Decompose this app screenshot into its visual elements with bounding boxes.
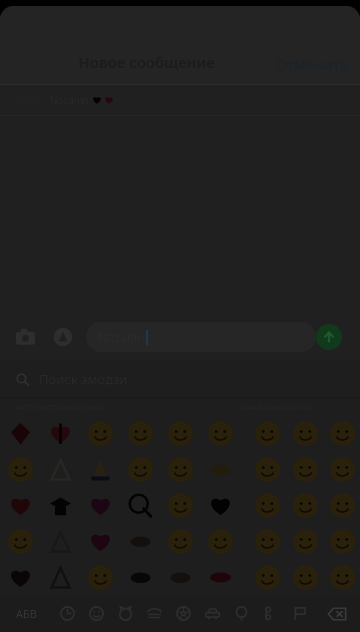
button[interactable]: Смайлики [82, 595, 111, 632]
button[interactable]: АБВ [0, 595, 52, 632]
button[interactable] [40, 415, 80, 451]
button[interactable] [0, 487, 40, 523]
button[interactable] [200, 523, 240, 559]
button[interactable]: Приложения iMessage [48, 322, 78, 352]
staticText: АБВ [16, 606, 37, 621]
button[interactable] [324, 487, 360, 523]
button[interactable] [248, 415, 286, 451]
button[interactable] [40, 559, 80, 595]
button[interactable] [120, 451, 160, 487]
button[interactable] [40, 487, 80, 523]
button[interactable] [120, 559, 160, 595]
button[interactable] [286, 415, 324, 451]
staticText: Отменить [276, 54, 348, 74]
button[interactable] [40, 451, 80, 487]
button[interactable] [248, 523, 286, 559]
button[interactable] [160, 559, 200, 595]
button[interactable] [160, 451, 200, 487]
button[interactable] [200, 415, 240, 451]
button[interactable] [286, 559, 324, 595]
button[interactable]: Отправить [316, 324, 342, 350]
button[interactable]: Камера [10, 322, 40, 352]
button[interactable] [200, 487, 240, 523]
button[interactable] [248, 487, 286, 523]
button[interactable] [160, 487, 200, 523]
button[interactable] [286, 523, 324, 559]
button[interactable] [160, 415, 200, 451]
button[interactable] [80, 523, 120, 559]
button[interactable]: Символы [256, 595, 285, 632]
button[interactable]: Недавние [52, 595, 82, 632]
button[interactable] [324, 559, 360, 595]
button[interactable]: Флаги [285, 595, 314, 632]
button[interactable]: Путешествия [198, 595, 227, 632]
button[interactable]: Активность [169, 595, 198, 632]
button[interactable] [0, 523, 40, 559]
button[interactable] [0, 451, 40, 487]
staticText: Новое сообщение [78, 52, 215, 72]
button[interactable]: Объекты [227, 595, 256, 632]
button[interactable] [324, 523, 360, 559]
button[interactable] [248, 451, 286, 487]
button[interactable] [286, 451, 324, 487]
button[interactable] [324, 451, 360, 487]
button[interactable] [286, 487, 324, 523]
button[interactable] [0, 559, 40, 595]
button[interactable] [200, 559, 240, 595]
button[interactable]: Животные [111, 595, 140, 632]
button[interactable]: Еда [140, 595, 169, 632]
button[interactable] [80, 559, 120, 595]
button[interactable] [80, 451, 120, 487]
button[interactable] [324, 415, 360, 451]
button[interactable] [0, 415, 40, 451]
button[interactable] [200, 451, 240, 487]
button[interactable] [80, 415, 120, 451]
button[interactable] [160, 523, 200, 559]
button[interactable] [120, 415, 160, 451]
button[interactable] [120, 523, 160, 559]
button[interactable]: Удалить [314, 595, 360, 632]
button[interactable] [120, 487, 160, 523]
button[interactable] [248, 559, 286, 595]
button[interactable] [80, 487, 120, 523]
